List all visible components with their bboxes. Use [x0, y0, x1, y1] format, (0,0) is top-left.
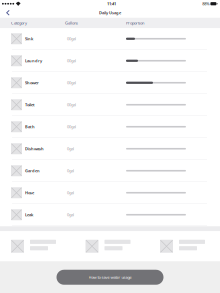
staticText: 00gal: [67, 124, 76, 129]
button[interactable]: Shower: [0, 72, 220, 94]
staticText: Proportion: [126, 20, 144, 26]
staticText: 00gal: [67, 80, 76, 85]
staticText: 00gal: [67, 36, 76, 41]
button[interactable]: Hose: [0, 182, 220, 204]
staticText: Gallons: [65, 20, 78, 26]
button[interactable]: Garden: [0, 160, 220, 182]
button[interactable]: Water saving tip: [85, 240, 130, 253]
button[interactable]: Back: [0, 8, 14, 18]
button[interactable]: How to save water usage: [56, 270, 163, 285]
staticText: 00gal: [67, 102, 76, 107]
staticText: Sink: [25, 36, 33, 41]
button[interactable]: Bath: [0, 116, 220, 138]
staticText: Bath: [25, 124, 35, 129]
staticText: Dishwash: [25, 146, 44, 151]
staticText: 11:41: [107, 1, 116, 6]
staticText: Category: [11, 20, 27, 26]
button[interactable]: Leak: [0, 204, 220, 226]
staticText: 00gal: [67, 58, 76, 63]
staticText: 0gal: [67, 146, 74, 151]
button[interactable]: Toilet: [0, 94, 220, 116]
staticText: How to save water usage: [88, 275, 131, 280]
button[interactable]: Laundry: [0, 50, 220, 72]
staticText: Leak: [25, 212, 33, 217]
staticText: Toilet: [25, 102, 35, 107]
button[interactable]: Water saving tip: [160, 240, 205, 253]
button[interactable]: Dishwash: [0, 138, 220, 160]
button[interactable]: Water saving tip: [11, 240, 56, 253]
staticText: 0gal: [67, 212, 74, 217]
staticText: 88%: [202, 1, 209, 6]
staticText: Shower: [25, 80, 39, 85]
staticText: Daily Usage: [99, 10, 121, 15]
staticText: Laundry: [25, 58, 42, 63]
staticText: Hose: [25, 190, 34, 195]
staticText: 0gal: [67, 190, 74, 195]
button[interactable]: Sink: [0, 28, 220, 50]
staticText: Garden: [25, 168, 40, 173]
staticText: 0gal: [67, 168, 74, 173]
